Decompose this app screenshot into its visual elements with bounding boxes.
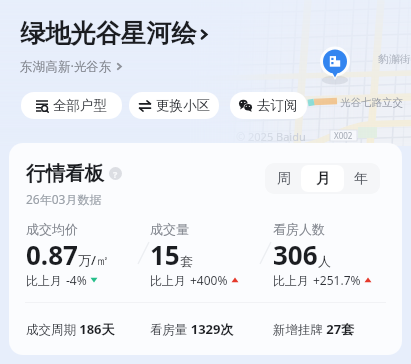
staticText: 0.87 (26, 237, 78, 272)
staticText: 比上月 (26, 272, 66, 288)
button[interactable]: 更换小区 (129, 92, 219, 119)
staticText: 去订阅 (257, 97, 298, 114)
staticText: 东湖高新·光谷东 (20, 58, 112, 75)
staticText: ? (113, 168, 118, 180)
staticText: 人 (318, 253, 331, 269)
staticText: +400% (190, 272, 228, 288)
staticText: 看房人数 (273, 221, 325, 237)
staticText: 全部户型 (53, 97, 107, 114)
staticText: 套 (180, 253, 193, 269)
button[interactable]: 全部户型 (21, 92, 122, 119)
staticText: 绿地光谷星河绘 (20, 18, 197, 50)
staticText: 年 (354, 170, 368, 188)
button[interactable]: 周 (267, 165, 301, 192)
button[interactable]: 东湖高新·光谷东 (20, 58, 125, 75)
staticText: 成交周期 186天 (26, 320, 115, 338)
staticText: 万/㎡ (78, 251, 110, 269)
staticText: 更换小区 (156, 97, 210, 114)
staticText: 看房量 1329次 (150, 320, 234, 338)
staticText: 月 (316, 170, 330, 188)
button[interactable]: 年 (344, 165, 378, 192)
button[interactable]: 绿地光谷星河绘 (20, 18, 212, 50)
staticText: 15 (150, 237, 180, 272)
staticText: 周 (277, 170, 291, 188)
staticText: +251.7% (313, 272, 361, 288)
staticText: -4% (66, 272, 87, 288)
button[interactable]: 说明 (109, 167, 122, 180)
staticText: 306 (273, 237, 318, 272)
staticText: 新增挂牌 27套 (273, 320, 355, 338)
staticText: 成交量 (150, 221, 189, 237)
button[interactable]: 月 (301, 165, 344, 192)
button[interactable]: 去订阅 (230, 92, 307, 119)
staticText: 比上月 (273, 272, 313, 288)
staticText: 成交均价 (26, 221, 78, 237)
staticText: 26年03月数据 (26, 191, 102, 207)
staticText: 比上月 (150, 272, 190, 288)
staticText: 行情看板 (26, 161, 104, 186)
